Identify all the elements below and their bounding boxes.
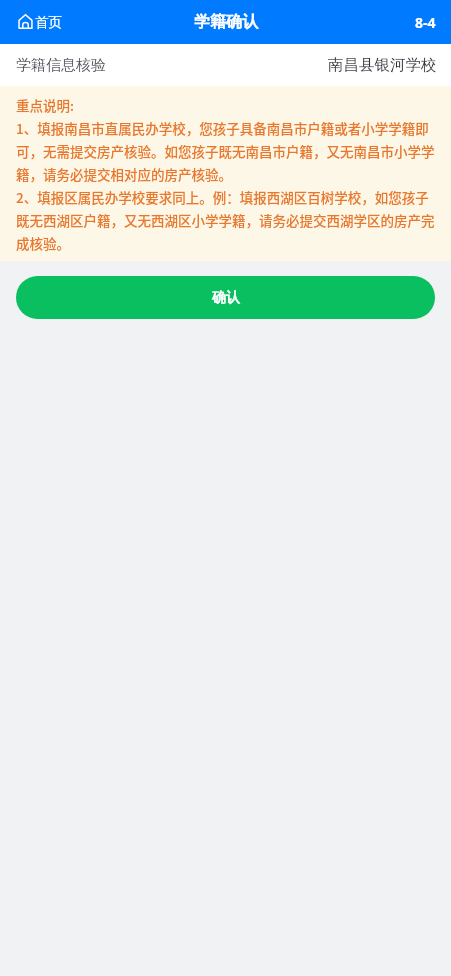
staticText: 南昌县银河学校 (328, 55, 437, 75)
staticText: 8-4 (415, 13, 436, 32)
staticText: 首页 (35, 14, 62, 31)
other: 首页 (18, 13, 33, 30)
staticText: 确认 (212, 289, 240, 307)
staticText: 学籍确认 (194, 12, 258, 32)
button[interactable]: 确认 (16, 276, 435, 319)
button[interactable]: 首页 (18, 0, 62, 44)
staticText: 学籍信息核验 (16, 56, 106, 75)
staticText: 重点说明: 1、填报南昌市直属民办学校，您孩子具备南昌市户籍或者小学学籍即 可，… (16, 93, 435, 254)
